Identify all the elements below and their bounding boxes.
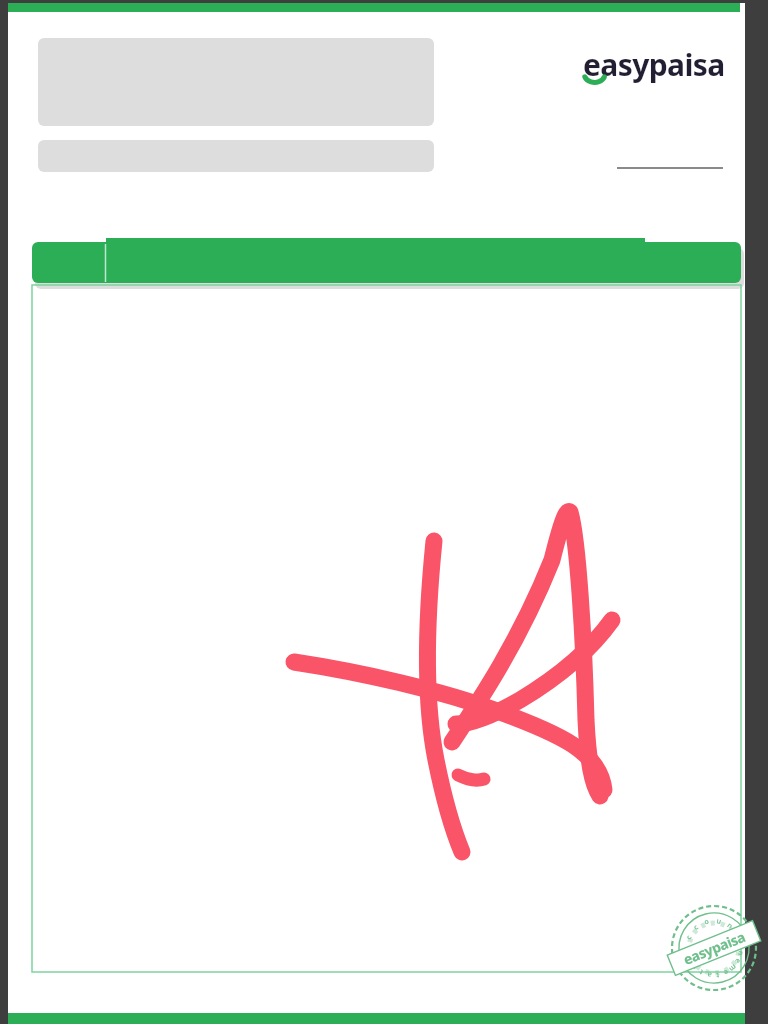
button[interactable]: easypaisa account statement document xyxy=(0,0,768,1024)
